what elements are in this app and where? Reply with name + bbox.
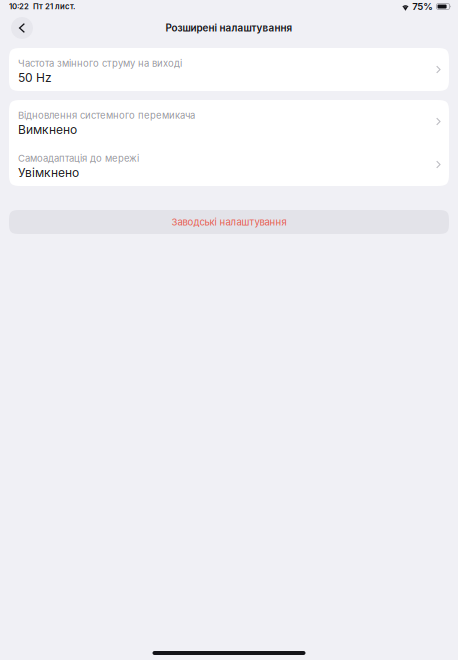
- staticText: Частота змінного струму на виході: [18, 57, 182, 69]
- button[interactable]: Заводські налаштування: [9, 210, 449, 234]
- staticText: 75%: [412, 1, 433, 12]
- staticText: Увімкнено: [18, 165, 79, 180]
- staticText: Розширені налаштування: [165, 22, 292, 34]
- staticText: 50 Hz: [18, 70, 52, 85]
- button[interactable]: Відновлення системного перемикача: [9, 100, 449, 143]
- staticText: Вимкнено: [18, 122, 77, 137]
- button[interactable]: Back: [10, 16, 34, 40]
- staticText: Відновлення системного перемикача: [18, 109, 195, 121]
- staticText: Заводські налаштування: [171, 216, 286, 228]
- staticText: 10:22 Пт 21 лист.: [9, 2, 75, 11]
- staticText: Самоадаптація до мережі: [18, 152, 139, 164]
- button[interactable]: Самоадаптація до мережі: [9, 143, 449, 186]
- button[interactable]: Частота змінного струму на виході: [9, 48, 449, 91]
